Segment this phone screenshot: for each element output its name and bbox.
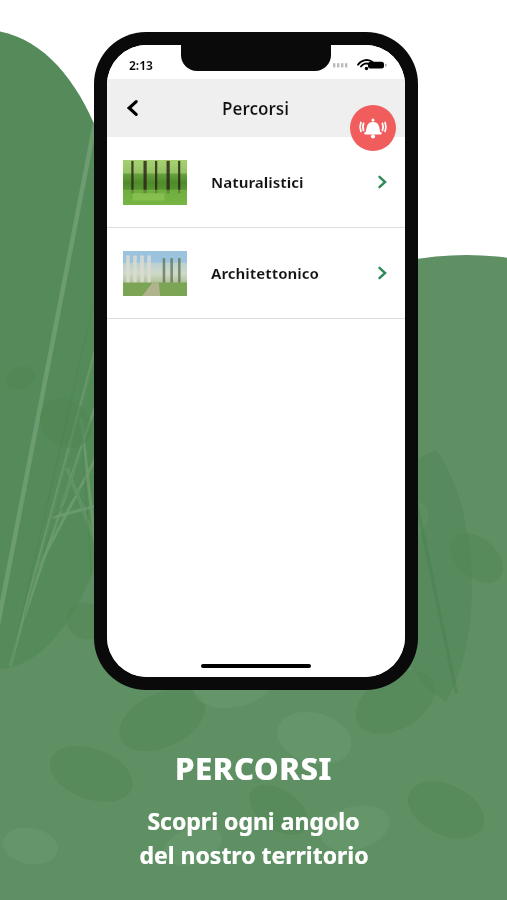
button[interactable]: Naturalistici	[107, 137, 405, 227]
button[interactable]: Architettonico	[107, 228, 405, 318]
staticText: PERCORSI	[175, 747, 332, 789]
staticText: Naturalistici	[211, 172, 304, 192]
staticText: Architettonico	[211, 263, 319, 283]
staticText: 2:13	[129, 57, 153, 73]
button[interactable]: Back	[113, 88, 153, 128]
staticText: Scopri ogni angolo	[147, 805, 360, 836]
staticText: del nostro territorio	[139, 839, 369, 870]
staticText: Percorsi	[222, 97, 290, 120]
button[interactable]: Notifications	[350, 105, 396, 151]
